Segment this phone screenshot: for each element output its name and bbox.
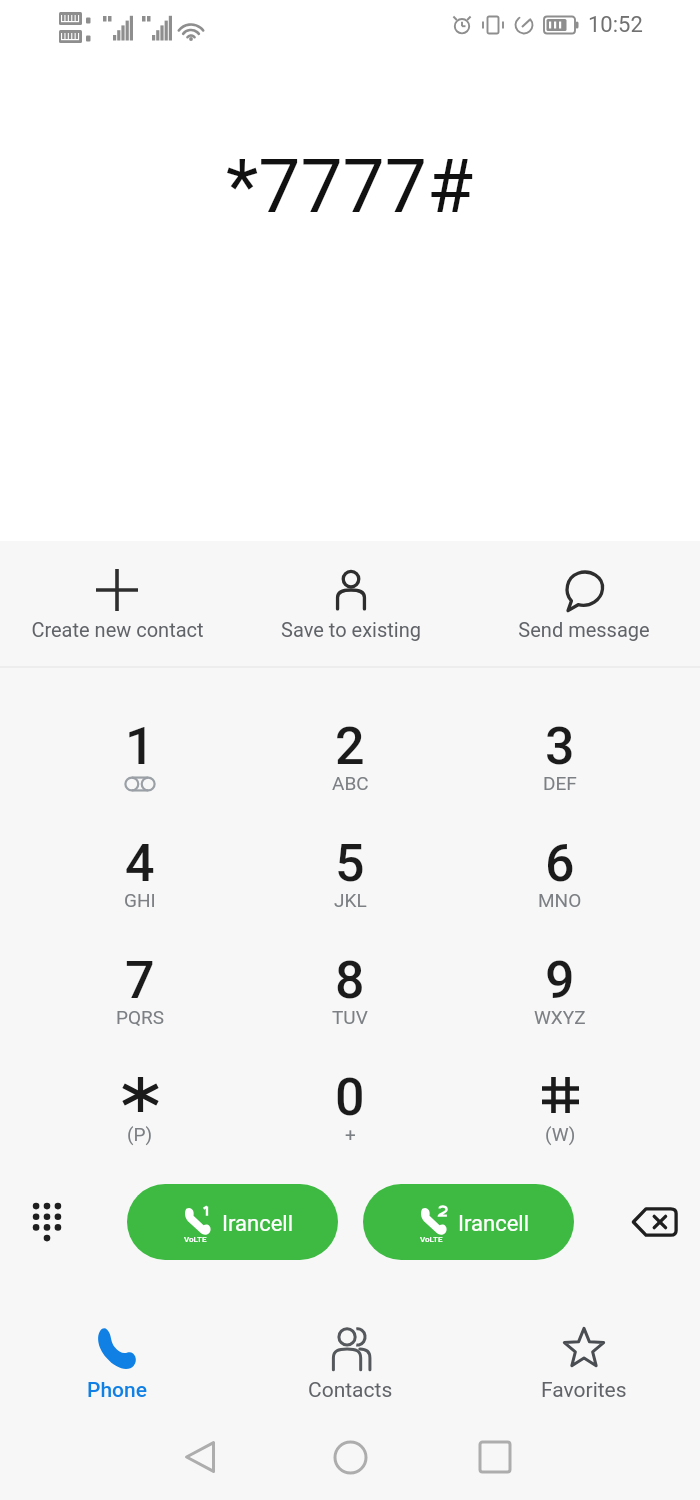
button[interactable]: 8 — [245, 936, 455, 1053]
staticText: MNO — [538, 889, 582, 911]
staticText: + — [345, 1123, 356, 1145]
staticText: (W) — [545, 1123, 576, 1145]
button[interactable]: VoLTE — [363, 1184, 574, 1260]
staticText: VoLTE — [184, 1235, 207, 1244]
staticText: Save to existing — [281, 618, 421, 641]
staticText: Favorites — [541, 1378, 627, 1403]
button[interactable]: VoLTE — [127, 1184, 338, 1260]
button[interactable]: Show dialpad — [11, 1186, 83, 1258]
staticText: 3 — [545, 716, 575, 777]
staticText: 8 — [335, 950, 365, 1011]
button[interactable]: Send message — [467, 541, 700, 666]
staticText: 7 — [125, 950, 155, 1011]
button[interactable]: Home — [314, 1427, 386, 1487]
staticText: 2 — [335, 716, 365, 777]
staticText: *7777# — [226, 142, 474, 230]
button[interactable]: 3 — [455, 702, 665, 819]
staticText: TUV — [332, 1006, 368, 1028]
button[interactable]: 1 — [35, 702, 245, 819]
staticText: 0 — [335, 1067, 365, 1128]
staticText: WXYZ — [534, 1006, 586, 1028]
staticText: DEF — [543, 772, 577, 794]
staticText: Phone — [87, 1378, 147, 1403]
button[interactable]: Favorites — [467, 1311, 700, 1389]
staticText: ABC — [332, 772, 369, 794]
button[interactable]: (P) — [35, 1053, 245, 1170]
button[interactable]: Back — [164, 1427, 236, 1487]
staticText: VoLTE — [420, 1235, 443, 1244]
button[interactable]: 2 — [245, 702, 455, 819]
staticText: Irancell — [222, 1211, 294, 1237]
staticText: Irancell — [458, 1211, 530, 1237]
staticText: 9 — [545, 950, 575, 1011]
button[interactable]: 0 — [245, 1053, 455, 1170]
staticText: PQRS — [116, 1006, 165, 1028]
button[interactable]: Backspace — [618, 1186, 690, 1258]
staticText: 1 — [125, 716, 155, 777]
button[interactable]: Create new contact — [0, 541, 234, 666]
button[interactable]: 5 — [245, 819, 455, 936]
staticText: 10:52 — [588, 12, 643, 38]
staticText: GHI — [124, 889, 156, 911]
button[interactable]: Recents — [459, 1427, 531, 1487]
button[interactable]: 9 — [455, 936, 665, 1053]
button[interactable]: 4 — [35, 819, 245, 936]
staticText: 4 — [125, 833, 155, 894]
staticText: 6 — [545, 833, 575, 894]
button[interactable]: 6 — [455, 819, 665, 936]
button[interactable]: 7 — [35, 936, 245, 1053]
staticText: Contacts — [308, 1378, 393, 1403]
button[interactable]: Contacts — [234, 1311, 467, 1389]
button[interactable]: (W) — [455, 1053, 665, 1170]
staticText: JKL — [334, 889, 367, 911]
button[interactable]: Save to existing — [234, 541, 467, 666]
staticText: Send message — [518, 618, 650, 641]
staticText: (P) — [127, 1123, 153, 1145]
staticText: 5 — [335, 833, 365, 894]
button[interactable]: Phone — [0, 1311, 234, 1389]
staticText: Create new contact — [31, 618, 204, 641]
